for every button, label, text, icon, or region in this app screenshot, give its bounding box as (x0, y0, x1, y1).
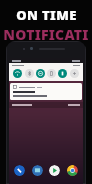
button[interactable]: Bluetooth (25, 69, 34, 78)
button[interactable]: Battery saver (47, 69, 56, 78)
staticText: NOTIFICATION (0, 25, 92, 63)
button[interactable]: Play Store (49, 165, 60, 176)
button[interactable]: Flashlight (58, 69, 67, 78)
button[interactable]: Do not disturb (36, 69, 45, 78)
button[interactable]: Wi-Fi (13, 69, 22, 78)
staticText: ON TIME (16, 6, 77, 24)
button[interactable] (10, 83, 82, 100)
button[interactable]: Add tile (70, 69, 79, 78)
button[interactable]: Chrome (67, 165, 78, 176)
button[interactable]: Phone (14, 165, 25, 176)
button[interactable] (9, 102, 83, 108)
button[interactable]: Messages (32, 165, 43, 176)
